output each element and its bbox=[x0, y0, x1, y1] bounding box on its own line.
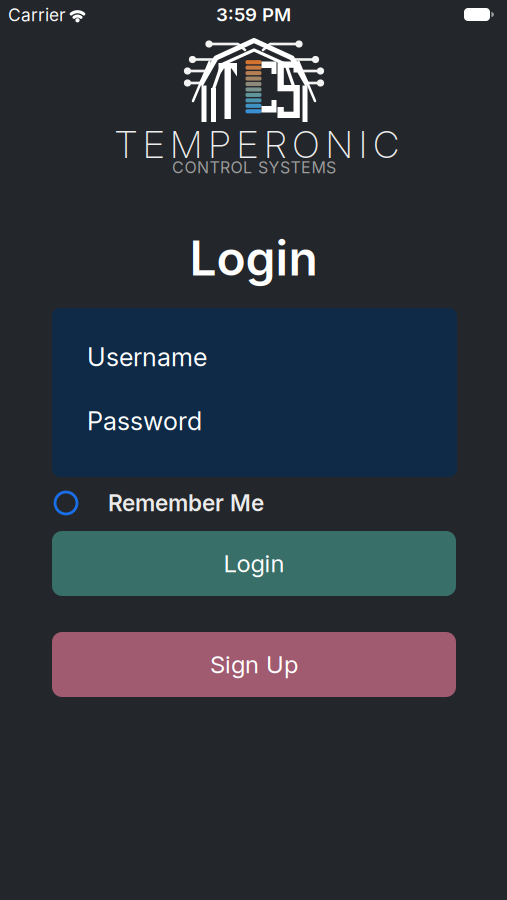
button[interactable]: Sign Up bbox=[52, 632, 456, 697]
staticText: Username bbox=[87, 342, 207, 372]
staticText: TEMPERONIC bbox=[115, 122, 399, 167]
staticText: Login bbox=[223, 549, 284, 578]
staticText: Password bbox=[87, 406, 202, 436]
staticText: Sign Up bbox=[210, 650, 298, 679]
staticText: CONTROL SYSTEMS bbox=[172, 158, 336, 177]
staticText: Remember Me bbox=[108, 490, 264, 516]
button[interactable]: Username bbox=[87, 335, 457, 379]
button[interactable]: Password bbox=[87, 399, 457, 443]
staticText: Carrier bbox=[8, 5, 66, 25]
button[interactable]: Login bbox=[52, 531, 456, 596]
staticText: Login bbox=[189, 230, 317, 286]
staticText: 3:59 PM bbox=[216, 3, 291, 25]
button[interactable]: Remember Me bbox=[55, 486, 455, 520]
